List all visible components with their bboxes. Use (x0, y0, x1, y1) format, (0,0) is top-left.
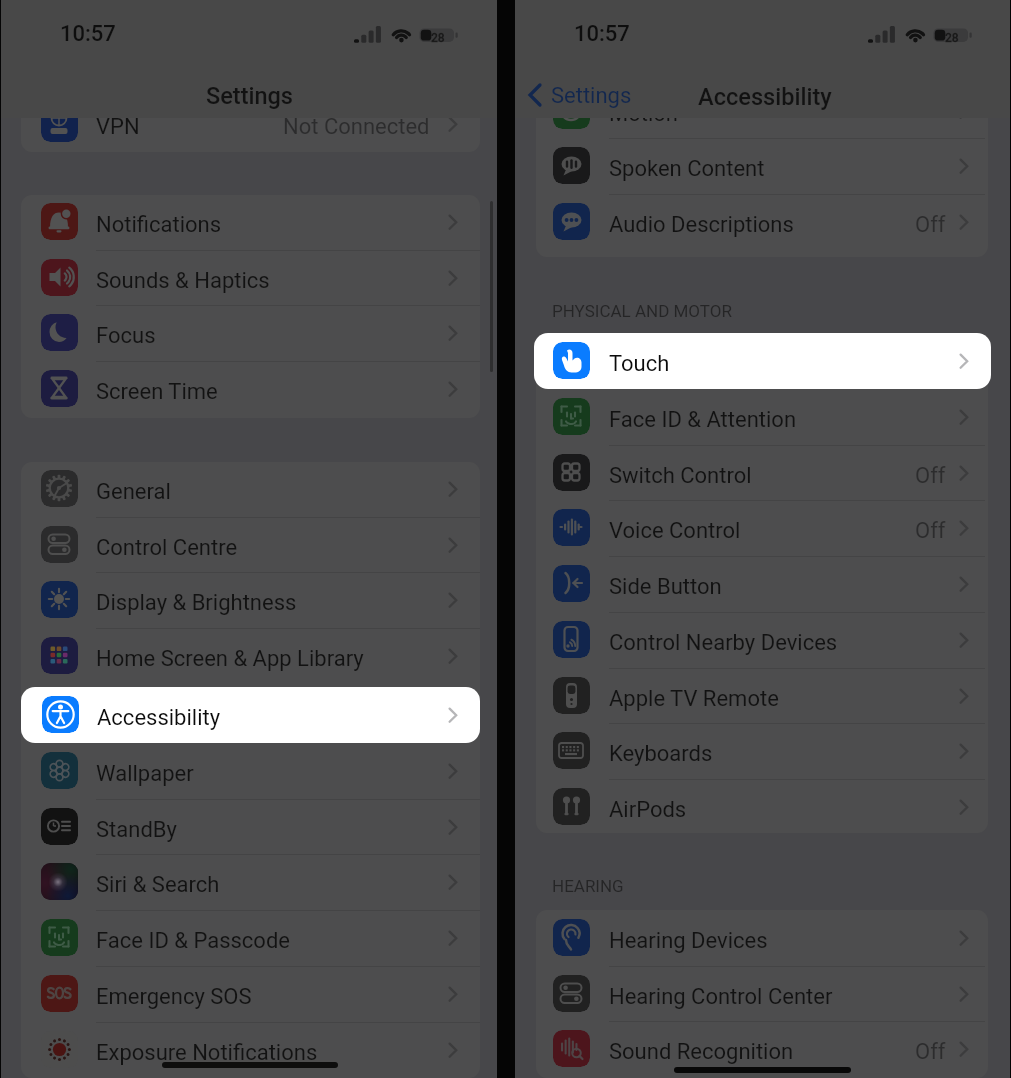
staticText: Focus (96, 323, 156, 349)
button[interactable]: Focus (21, 305, 480, 361)
button[interactable]: Motion (536, 118, 988, 139)
staticText: Accessibility (698, 83, 832, 111)
button[interactable]: Settings (523, 77, 663, 115)
button[interactable]: Siri & Search (21, 854, 480, 910)
button[interactable]: Home Screen & App Library (21, 628, 480, 684)
staticText: Motion (609, 118, 678, 127)
button[interactable]: Keyboards (536, 723, 988, 779)
staticText: VPN (96, 118, 140, 140)
button[interactable]: Notifications (21, 194, 480, 250)
button[interactable]: Side Button (536, 556, 988, 612)
staticText: Face ID & Attention (609, 407, 797, 433)
button[interactable]: Accessibility (21, 687, 480, 743)
staticText: HEARING (552, 876, 624, 896)
staticText: Side Button (609, 574, 722, 600)
staticText: Display & Brightness (96, 590, 297, 616)
button[interactable]: Face ID & Attention (536, 389, 988, 445)
button[interactable]: Display & Brightness (21, 572, 480, 628)
button[interactable]: General (21, 461, 480, 517)
button[interactable]: Emergency SOS (21, 966, 480, 1022)
button[interactable]: Control Centre (21, 517, 480, 573)
staticText: Notifications (96, 212, 222, 238)
staticText: AirPods (609, 797, 687, 823)
staticText: Voice Control (609, 518, 741, 544)
staticText: 28 (431, 31, 445, 45)
staticText: 10:57 (574, 21, 630, 47)
button[interactable]: Hearing Control Center (536, 966, 988, 1022)
button[interactable]: Face ID & Passcode (21, 910, 480, 966)
button[interactable]: VPN (21, 118, 480, 152)
staticText: Off (915, 518, 946, 544)
staticText: Spoken Content (609, 156, 765, 182)
staticText: Settings (206, 82, 294, 110)
staticText: Face ID & Passcode (96, 928, 290, 954)
staticText: Settings (551, 83, 632, 109)
staticText: General (96, 479, 171, 505)
button[interactable]: Switch Control (536, 445, 988, 501)
staticText: Siri & Search (96, 872, 220, 898)
staticText: Exposure Notifications (96, 1040, 318, 1066)
staticText: Sound Recognition (609, 1039, 794, 1065)
button[interactable]: Hearing Devices (536, 910, 988, 966)
button[interactable]: Sound Recognition (536, 1021, 988, 1077)
staticText: Sounds & Haptics (96, 268, 270, 294)
staticText: 28 (945, 31, 959, 45)
button[interactable]: Audio Descriptions (536, 194, 988, 250)
button[interactable]: Wallpaper (21, 743, 480, 799)
staticText: Off (915, 1039, 946, 1065)
staticText: Emergency SOS (96, 984, 252, 1010)
staticText: Off (915, 212, 946, 238)
staticText: Hearing Control Center (609, 984, 833, 1010)
staticText: Not Connected (283, 118, 430, 140)
staticText: StandBy (96, 817, 177, 843)
staticText: Hearing Devices (609, 928, 768, 954)
staticText: Control Nearby Devices (609, 630, 838, 656)
staticText: 10:57 (60, 21, 116, 47)
button[interactable]: AirPods (536, 779, 988, 835)
staticText: Apple TV Remote (609, 686, 779, 712)
button[interactable]: Exposure Notifications (21, 1022, 480, 1078)
staticText: Accessibility (97, 705, 221, 731)
button[interactable]: StandBy (21, 799, 480, 855)
button[interactable]: Screen Time (21, 361, 480, 417)
button[interactable]: Sounds & Haptics (21, 250, 480, 306)
staticText: Control Centre (96, 535, 238, 561)
button[interactable]: Touch (534, 333, 991, 389)
staticText: PHYSICAL AND MOTOR (552, 301, 732, 321)
staticText: Home Screen & App Library (96, 646, 364, 672)
staticText: Wallpaper (96, 761, 194, 787)
staticText: Audio Descriptions (609, 212, 794, 238)
button[interactable]: Voice Control (536, 500, 988, 556)
button[interactable]: Spoken Content (536, 138, 988, 194)
button[interactable]: Apple TV Remote (536, 668, 988, 724)
staticText: Touch (609, 351, 670, 377)
staticText: Switch Control (609, 463, 752, 489)
staticText: Screen Time (96, 379, 218, 405)
staticText: Keyboards (609, 741, 713, 767)
staticText: Off (915, 463, 946, 489)
button[interactable]: Control Nearby Devices (536, 612, 988, 668)
